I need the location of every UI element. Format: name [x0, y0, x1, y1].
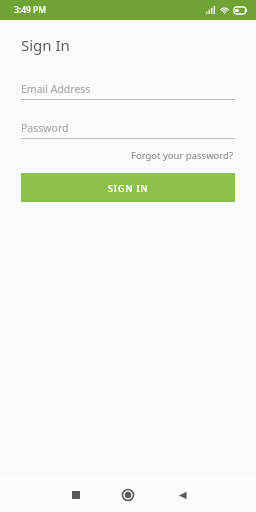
- staticText: Password: [21, 121, 69, 135]
- button[interactable]: SIGN IN: [21, 173, 235, 202]
- staticText: Sign In: [21, 35, 70, 55]
- button[interactable]: Recent apps: [56, 478, 96, 512]
- staticText: Email Address: [21, 82, 91, 96]
- button[interactable]: Home: [108, 478, 148, 512]
- staticText: 3:49 PM: [14, 4, 47, 16]
- staticText: SIGN IN: [108, 182, 149, 194]
- button[interactable]: Password: [21, 121, 235, 139]
- button[interactable]: Forgot your password?: [129, 147, 236, 164]
- button[interactable]: Back: [162, 478, 202, 512]
- staticText: Forgot your password?: [131, 149, 234, 162]
- button[interactable]: Email Address: [21, 82, 235, 100]
